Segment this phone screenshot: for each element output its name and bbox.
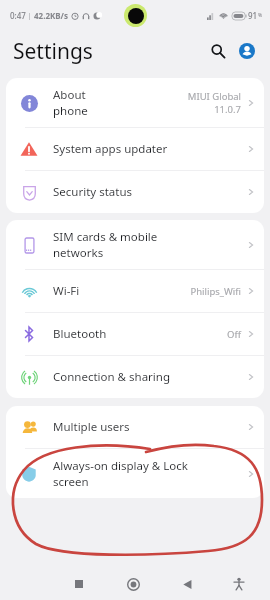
button[interactable]: Recents [66,571,92,597]
button[interactable]: Search [206,39,230,63]
button[interactable]: Bluetooth [6,313,264,355]
button[interactable]: Back [174,571,200,597]
staticText: Bluetooth [53,326,227,342]
staticText: Wi-Fi [53,283,190,299]
staticText: % [258,12,263,19]
staticText: Connection & sharing [53,369,246,385]
button[interactable]: Wi-Fi [6,270,264,312]
staticText: About phone [53,87,187,118]
staticText: System apps updater [53,141,246,157]
button[interactable]: About phone [6,78,264,127]
button[interactable]: Multiple users [6,406,264,448]
button[interactable]: Account [235,39,259,63]
button[interactable]: Connection & sharing [6,356,264,398]
button[interactable]: Security status [6,171,264,213]
staticText: Multiple users [53,419,246,435]
staticText: Security status [53,184,246,200]
staticText: Philips_Wifi [190,285,241,298]
staticText: Always-on display & Lock screen [53,458,246,489]
staticText: 42.2KB/s [34,10,68,21]
button[interactable]: Always-on display & Lock screen [6,449,264,498]
staticText: Off [227,328,241,341]
button[interactable]: Home [120,571,146,597]
staticText: SIM cards & mobile networks [53,229,246,260]
staticText: 0:47 [10,10,26,21]
staticText: Settings [13,37,93,66]
button[interactable]: SIM cards & mobile networks [6,220,264,269]
button[interactable]: System apps updater [6,128,264,170]
staticText: MIUI Global 11.0.7 [187,90,241,116]
staticText: | [26,11,34,21]
button[interactable]: Accessibility [226,571,252,597]
staticText: 91 [248,10,258,21]
